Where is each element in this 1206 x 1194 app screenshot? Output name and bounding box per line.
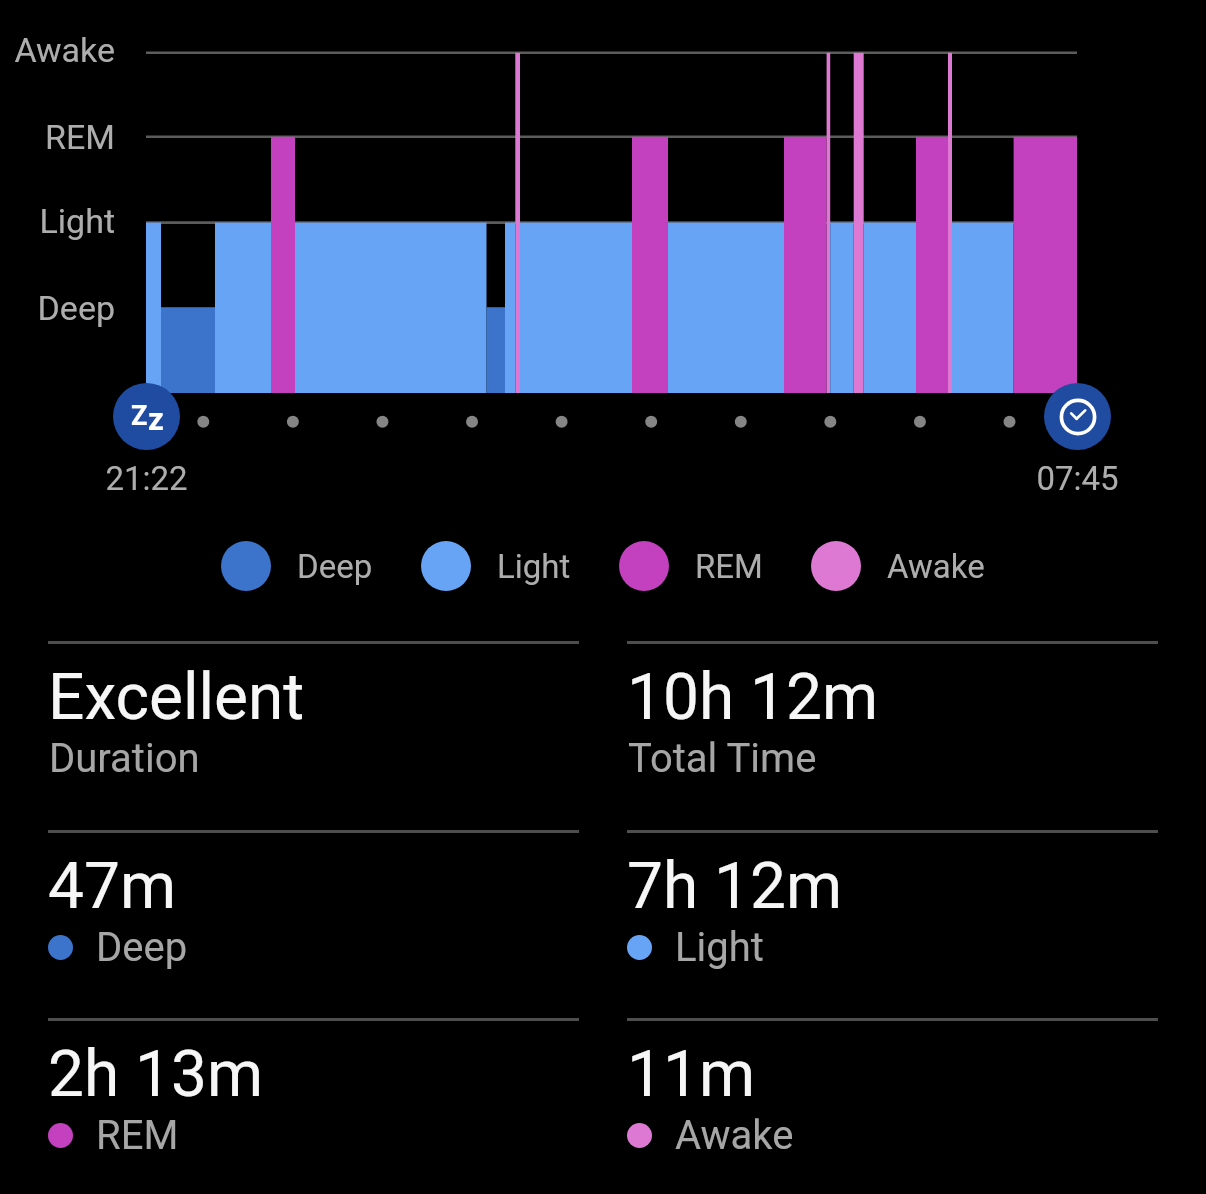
staticText: Light (497, 547, 571, 586)
staticText: 7h 12m (627, 849, 843, 924)
staticText: Light (39, 201, 115, 241)
staticText: REM (695, 547, 763, 586)
staticText: Deep (297, 547, 373, 586)
staticText: 47m (48, 849, 177, 924)
button[interactable]: 47m (48, 830, 579, 1018)
staticText: 11m (627, 1037, 756, 1112)
staticText: Awake (675, 1112, 794, 1159)
staticText: Z (131, 400, 148, 432)
button[interactable]: Sleep start time (113, 383, 180, 450)
button[interactable]: 11m (627, 1018, 1158, 1194)
staticText: 21:22 (105, 459, 188, 498)
staticText: REM (45, 117, 115, 157)
staticText: Awake (14, 30, 115, 70)
staticText: Light (675, 924, 764, 971)
button[interactable]: Wake up time (1044, 383, 1111, 450)
button[interactable]: Light (421, 541, 571, 591)
button[interactable]: 2h 13m (48, 1018, 579, 1194)
button[interactable]: 10h 12m (627, 641, 1158, 829)
staticText: 07:45 (1036, 459, 1119, 498)
staticText: z (148, 401, 164, 437)
staticText: REM (96, 1112, 179, 1159)
button[interactable]: Deep (221, 541, 373, 591)
button[interactable]: Awake (811, 541, 985, 591)
staticText: Deep (37, 288, 115, 328)
button[interactable]: 7h 12m (627, 830, 1158, 1018)
staticText: 2h 13m (48, 1037, 264, 1112)
button[interactable]: Excellent (48, 641, 579, 829)
staticText: Excellent (48, 660, 305, 735)
staticText: Deep (96, 924, 188, 971)
staticText: Total Time (628, 735, 817, 782)
staticText: Duration (49, 735, 200, 782)
button[interactable]: REM (619, 541, 763, 591)
staticText: 10h 12m (627, 660, 879, 735)
staticText: Awake (887, 547, 985, 586)
